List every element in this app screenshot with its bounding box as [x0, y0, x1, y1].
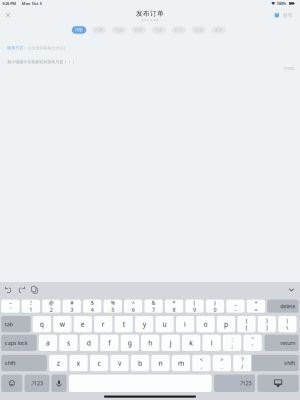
- staticText: d: [87, 338, 91, 347]
- staticText: >: [220, 356, 223, 363]
- button[interactable]: i: [176, 316, 194, 332]
- button[interactable]: shift: [251, 355, 299, 371]
- button[interactable]: l: [202, 335, 221, 351]
- button[interactable]: |: [278, 316, 296, 332]
- button[interactable]: (: [185, 300, 204, 313]
- staticText: ;: [232, 343, 233, 350]
- button[interactable]: w: [53, 316, 71, 332]
- staticText: h: [148, 338, 152, 347]
- button[interactable]: j: [162, 335, 180, 351]
- button[interactable]: 代送: [112, 26, 126, 34]
- button[interactable]: .?123: [214, 375, 255, 392]
- staticText: 其他: [195, 27, 203, 32]
- staticText: 点击填写联系方式QQ: [27, 45, 65, 51]
- staticText: -: [234, 306, 236, 313]
- staticText: c: [98, 359, 101, 367]
- button[interactable]: ^: [124, 300, 142, 313]
- button[interactable]: {: [237, 316, 256, 332]
- button[interactable]: k: [182, 335, 200, 351]
- button[interactable]: +: [247, 300, 265, 313]
- button[interactable]: >: [213, 355, 231, 371]
- button[interactable]: 表情: [1, 375, 22, 392]
- button[interactable]: t: [114, 316, 133, 332]
- button[interactable]: x: [69, 355, 88, 371]
- button[interactable]: 关闭: [2, 9, 13, 20]
- button[interactable]: m: [172, 355, 190, 371]
- button[interactable]: 重做: [17, 285, 26, 294]
- staticText: ": [252, 336, 254, 343]
- button[interactable]: 收起键盘: [257, 375, 299, 392]
- button[interactable]: caps lock: [1, 335, 37, 351]
- button[interactable]: e: [74, 316, 92, 332]
- button[interactable]: 联系方式：: [7, 44, 65, 51]
- button[interactable]: y: [135, 316, 153, 332]
- button[interactable]: 代办: [152, 26, 166, 34]
- staticText: s: [67, 338, 70, 347]
- staticText: ,: [201, 363, 202, 370]
- staticText: l: [211, 338, 213, 347]
- button[interactable]: :: [223, 335, 241, 351]
- button[interactable]: d: [80, 335, 98, 351]
- button[interactable]: c: [90, 355, 108, 371]
- button[interactable]: #: [63, 300, 81, 313]
- button[interactable]: @: [42, 300, 60, 313]
- button[interactable]: g: [121, 335, 139, 351]
- button[interactable]: .?123: [25, 375, 49, 392]
- button[interactable]: r: [94, 316, 112, 332]
- staticText: 代取: [75, 27, 83, 32]
- button[interactable]: ": [243, 335, 262, 351]
- button[interactable]: f: [100, 335, 118, 351]
- staticText: 联系方式：: [7, 45, 27, 50]
- button[interactable]: &: [144, 300, 163, 313]
- button[interactable]: delete: [267, 300, 299, 313]
- button[interactable]: }: [258, 316, 276, 332]
- button[interactable]: 更多: [211, 26, 226, 34]
- staticText: &: [152, 299, 156, 306]
- button[interactable]: 语音输入: [51, 375, 67, 392]
- button[interactable]: 代排: [132, 26, 146, 34]
- staticText: 7: [152, 306, 155, 313]
- button[interactable]: 发布: [275, 10, 292, 21]
- button[interactable]: 打印: [172, 26, 186, 34]
- staticText: 0: [213, 306, 216, 313]
- staticText: 9:26 PM: [2, 1, 16, 6]
- staticText: !: [30, 299, 31, 306]
- staticText: e: [81, 320, 85, 329]
- button[interactable]: %: [104, 300, 122, 313]
- button[interactable]: 粘贴: [30, 285, 39, 294]
- button[interactable]: _: [226, 300, 245, 313]
- button[interactable]: z: [49, 355, 67, 371]
- button[interactable]: ?: [233, 355, 251, 371]
- button[interactable]: o: [196, 316, 215, 332]
- button[interactable]: 代购: [92, 26, 106, 34]
- button[interactable]: ~: [1, 300, 19, 313]
- button[interactable]: v: [110, 355, 129, 371]
- button[interactable]: !: [22, 300, 40, 313]
- button[interactable]: h: [141, 335, 159, 351]
- button[interactable]: ): [206, 300, 224, 313]
- button[interactable]: a: [39, 335, 57, 351]
- button[interactable]: 代取: [72, 26, 86, 34]
- button[interactable]: b: [131, 355, 149, 371]
- button[interactable]: shift: [1, 355, 47, 371]
- button[interactable]: tab: [1, 316, 31, 332]
- button[interactable]: $: [83, 300, 101, 313]
- button[interactable]: return: [265, 335, 299, 351]
- staticText: 更多: [215, 27, 223, 32]
- button[interactable]: p: [217, 316, 235, 332]
- button[interactable]: s: [59, 335, 78, 351]
- staticText: $: [91, 299, 94, 306]
- button[interactable]: n: [151, 355, 170, 371]
- button[interactable]: *: [165, 300, 183, 313]
- staticText: 2: [50, 306, 53, 313]
- button[interactable]: u: [155, 316, 174, 332]
- staticText: shift: [284, 359, 295, 367]
- staticText: g: [128, 338, 132, 347]
- button[interactable]: q: [33, 316, 51, 332]
- button[interactable]: 撤销: [4, 285, 13, 294]
- staticText: =: [254, 306, 257, 313]
- button[interactable]: 其他: [191, 26, 206, 34]
- button[interactable]: 收起键盘: [287, 285, 296, 294]
- button[interactable]: <: [192, 355, 210, 371]
